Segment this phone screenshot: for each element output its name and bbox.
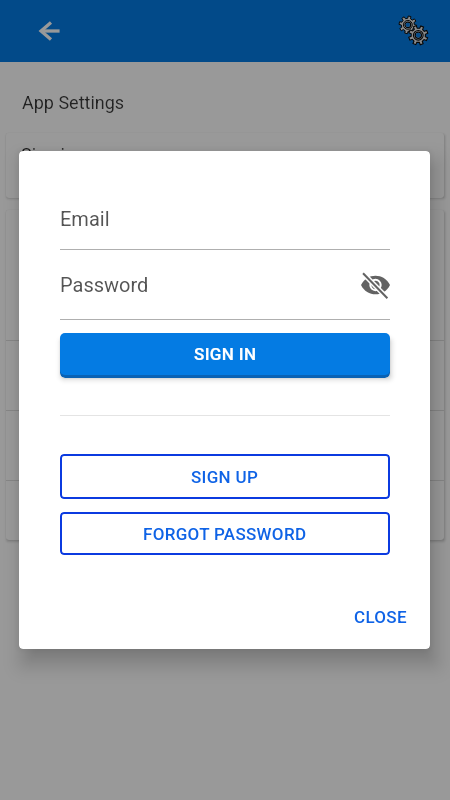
staticText: CLOSE — [354, 607, 407, 627]
button[interactable]: Show password — [360, 270, 390, 299]
button[interactable]: Back — [39, 9, 83, 53]
staticText: Sign in — [21, 144, 75, 165]
staticText: App Settings — [22, 92, 125, 113]
staticText: Privacy — [26, 436, 78, 455]
staticText: About — [26, 501, 69, 520]
button[interactable]: About — [6, 481, 444, 540]
staticText: Notifications — [26, 366, 117, 385]
button[interactable]: SIGN IN — [60, 333, 390, 375]
button[interactable]: Settings — [391, 8, 435, 52]
staticText: Password — [60, 273, 360, 296]
button[interactable]: Notifications — [6, 341, 444, 410]
button[interactable]: CLOSE — [338, 596, 423, 638]
staticText: FORGOT PASSWORD — [143, 524, 307, 544]
button[interactable]: Sign in — [6, 133, 444, 198]
staticText: SIGN IN — [194, 344, 257, 364]
staticText: Email — [60, 207, 110, 230]
staticText: SIGN UP — [191, 467, 259, 487]
button[interactable]: Privacy — [6, 411, 444, 480]
button[interactable]: Account — [6, 210, 444, 340]
button[interactable]: SIGN UP — [60, 454, 390, 499]
button[interactable]: FORGOT PASSWORD — [60, 512, 390, 555]
staticText: Account — [26, 266, 86, 285]
